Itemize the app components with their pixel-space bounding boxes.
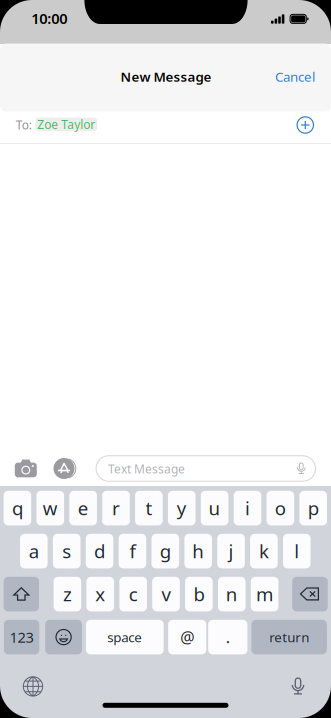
button[interactable]: l [283, 534, 311, 568]
staticText: To: [16, 117, 32, 133]
button[interactable]: f [119, 534, 146, 568]
button[interactable]: Zoe Taylor [35, 118, 97, 131]
button[interactable]: u [201, 491, 228, 525]
staticText: j [229, 539, 234, 563]
staticText: s [62, 539, 71, 563]
button[interactable]: t [135, 491, 163, 525]
staticText: k [259, 539, 269, 563]
button[interactable]: Text Message [96, 456, 316, 481]
staticText: space [107, 628, 142, 646]
staticText: v [161, 582, 170, 606]
button[interactable]: Audio message [296, 461, 307, 476]
button[interactable]: Camera [15, 459, 37, 477]
button[interactable]: b [185, 577, 213, 611]
staticText: u [209, 496, 221, 520]
button[interactable]: e [69, 491, 97, 525]
staticText: o [275, 496, 286, 520]
staticText: z [63, 582, 72, 606]
button[interactable]: Apps [53, 458, 77, 479]
staticText: p [308, 496, 319, 520]
staticText: x [95, 582, 105, 606]
staticText: . [226, 626, 230, 648]
button[interactable]: Emoji [45, 620, 82, 654]
staticText: q [12, 496, 23, 520]
button[interactable]: Period [208, 620, 247, 654]
button[interactable]: m [251, 577, 278, 611]
staticText: 123 [10, 627, 34, 647]
button[interactable]: c [119, 577, 147, 611]
button[interactable]: p [299, 491, 327, 525]
staticText: r [112, 496, 120, 520]
button[interactable]: w [36, 491, 64, 525]
button[interactable]: o [267, 491, 294, 525]
button[interactable]: r [102, 491, 130, 525]
staticText: t [145, 496, 152, 520]
button[interactable]: h [184, 534, 212, 568]
staticText: New Message [120, 68, 211, 85]
button[interactable]: y [168, 491, 195, 525]
staticText: y [177, 496, 187, 520]
staticText: 10:00 [31, 9, 67, 28]
staticText: h [192, 539, 204, 563]
button[interactable]: space [86, 620, 164, 654]
staticText: @ [180, 626, 194, 648]
button[interactable]: g [151, 534, 179, 568]
button[interactable]: k [250, 534, 278, 568]
button[interactable]: Shift [4, 577, 39, 611]
button[interactable]: j [217, 534, 245, 568]
button[interactable]: Next keyboard [22, 676, 43, 697]
staticText: Zoe Taylor [37, 116, 95, 132]
staticText: e [78, 496, 89, 520]
button[interactable]: Cancel [265, 61, 325, 91]
button[interactable]: d [86, 534, 113, 568]
staticText: b [193, 582, 204, 606]
button[interactable]: z [54, 577, 81, 611]
button[interactable]: Delete [292, 577, 328, 611]
button[interactable]: Dictation [290, 676, 306, 697]
staticText: w [43, 496, 58, 520]
staticText: Cancel [275, 68, 315, 85]
staticText: m [256, 582, 273, 606]
staticText: return [269, 628, 309, 646]
staticText: i [245, 496, 250, 520]
button[interactable]: @ [168, 620, 206, 654]
button[interactable]: q [4, 491, 31, 525]
button[interactable]: return [251, 620, 327, 654]
button[interactable]: x [86, 577, 114, 611]
button[interactable]: i [234, 491, 261, 525]
staticText: d [94, 539, 105, 563]
staticText: n [226, 582, 238, 606]
button[interactable]: v [152, 577, 180, 611]
staticText: c [129, 582, 138, 606]
staticText: a [29, 539, 39, 563]
staticText: Text Message [108, 461, 185, 477]
button[interactable]: Numbers [4, 620, 39, 654]
button[interactable]: Add contact [296, 116, 314, 134]
staticText: l [294, 539, 299, 563]
button[interactable]: a [20, 534, 48, 568]
button[interactable]: s [53, 534, 80, 568]
staticText: f [129, 539, 135, 563]
staticText: g [160, 539, 171, 563]
button[interactable]: n [218, 577, 245, 611]
